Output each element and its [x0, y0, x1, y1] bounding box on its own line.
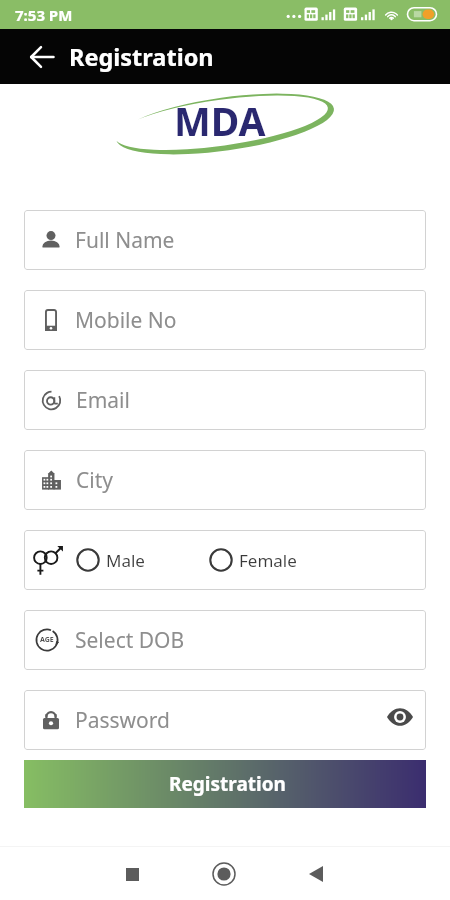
- button[interactable]: City: [24, 450, 426, 510]
- staticText: City: [76, 466, 113, 495]
- staticText: Mobile No: [75, 306, 177, 335]
- staticText: MDA: [174, 94, 266, 147]
- button[interactable]: Password: [24, 690, 426, 750]
- button[interactable]: Back: [293, 851, 339, 897]
- button[interactable]: Recent apps: [109, 851, 155, 897]
- button[interactable]: Back: [21, 29, 63, 84]
- button[interactable]: Male: [24, 530, 426, 590]
- staticText: Female: [239, 549, 297, 572]
- button[interactable]: Show password: [384, 701, 416, 733]
- staticText: Full Name: [75, 226, 175, 255]
- staticText: AGE: [40, 635, 54, 645]
- staticText: Male: [106, 549, 145, 572]
- staticText: Select DOB: [75, 626, 185, 655]
- button[interactable]: Registration: [24, 760, 426, 808]
- staticText: Registration: [169, 771, 286, 797]
- button[interactable]: Home: [201, 851, 247, 897]
- button[interactable]: Female: [209, 548, 297, 572]
- staticText: Password: [75, 706, 170, 735]
- button[interactable]: Full Name: [24, 210, 426, 270]
- button[interactable]: Email: [24, 370, 426, 430]
- staticText: Email: [76, 386, 130, 415]
- button[interactable]: AGE: [24, 610, 426, 670]
- staticText: Registration: [69, 41, 214, 73]
- staticText: 7:53 PM: [15, 5, 73, 25]
- button[interactable]: Mobile No: [24, 290, 426, 350]
- button[interactable]: Male: [76, 548, 145, 572]
